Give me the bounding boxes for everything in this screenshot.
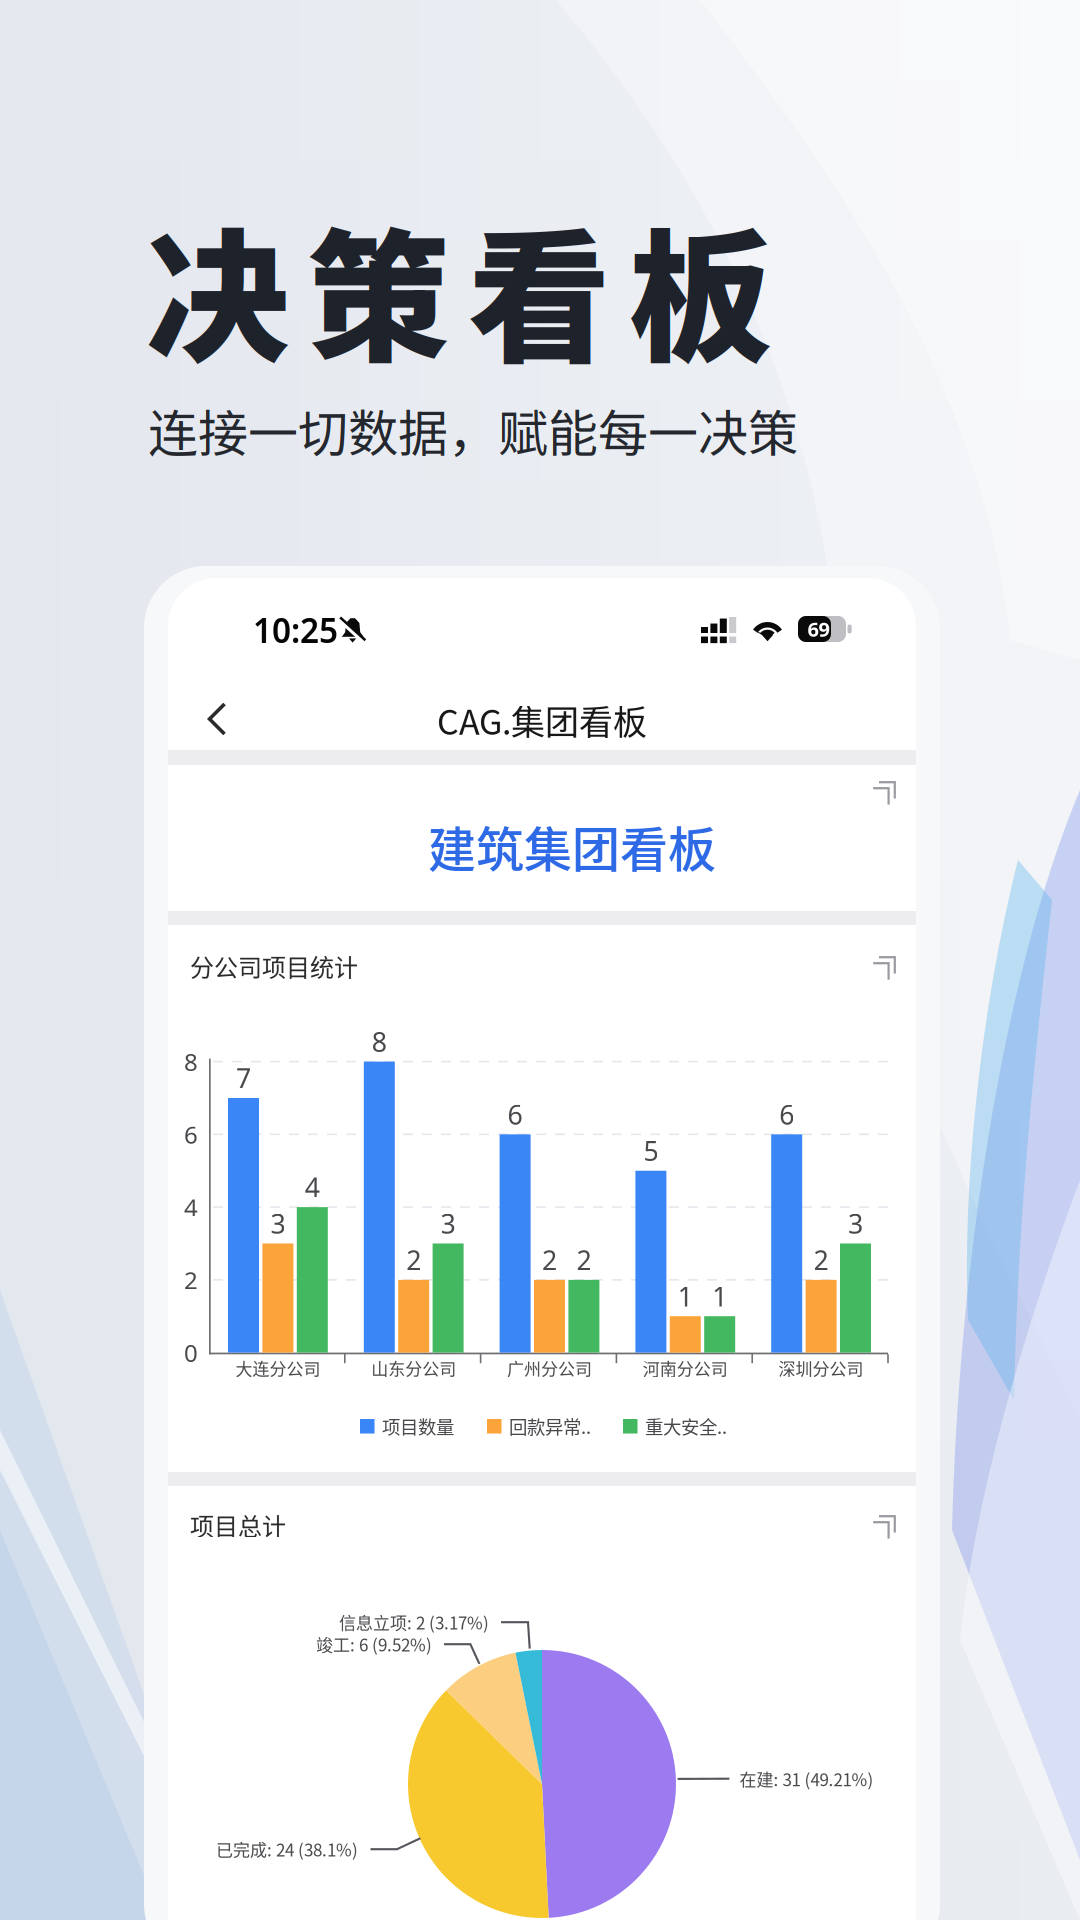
- staticText: 2: [406, 1242, 421, 1277]
- staticText: 大连分公司: [235, 1356, 320, 1380]
- staticText: CAG.集团看板: [437, 695, 647, 745]
- staticText: 6: [184, 1118, 198, 1150]
- staticText: 项目总计: [190, 1508, 286, 1542]
- staticText: 建筑集团看板: [428, 811, 716, 881]
- staticText: 2: [814, 1242, 829, 1277]
- staticText: 信息立项: 2 (3.17%): [339, 1610, 489, 1634]
- staticText: 4: [184, 1191, 198, 1223]
- staticText: 5: [643, 1133, 658, 1168]
- staticText: 重大安全..: [645, 1413, 727, 1439]
- staticText: 3: [270, 1206, 285, 1241]
- staticText: 分公司项目统计: [190, 949, 358, 983]
- staticText: 6: [779, 1097, 794, 1132]
- staticText: 板: [629, 184, 772, 392]
- staticText: 8: [372, 1024, 387, 1059]
- staticText: 0: [184, 1337, 198, 1369]
- staticText: 连接一切数据，赋能每一决策: [148, 394, 798, 466]
- staticText: 广州分公司: [507, 1356, 592, 1380]
- staticText: 4: [305, 1169, 320, 1205]
- staticText: 在建: 31 (49.21%): [739, 1766, 873, 1791]
- staticText: 已完成: 24 (38.1%): [216, 1837, 358, 1861]
- staticText: 决: [146, 184, 289, 392]
- staticText: 山东分公司: [371, 1356, 456, 1380]
- staticText: 3: [848, 1206, 863, 1241]
- staticText: 2: [576, 1242, 591, 1277]
- staticText: 6: [508, 1097, 523, 1132]
- staticText: 8: [184, 1046, 198, 1078]
- button[interactable]: Back: [178, 680, 256, 758]
- staticText: 10:25: [253, 608, 338, 652]
- staticText: 2: [542, 1242, 557, 1277]
- staticText: 7: [236, 1060, 251, 1096]
- staticText: 2: [184, 1264, 198, 1296]
- staticText: 1: [712, 1278, 727, 1314]
- staticText: 策: [307, 184, 450, 392]
- staticText: 3: [441, 1206, 456, 1241]
- staticText: 项目数量: [382, 1413, 454, 1439]
- staticText: 回款异常..: [509, 1413, 591, 1439]
- staticText: 深圳分公司: [779, 1356, 864, 1380]
- staticText: 竣工: 6 (9.52%): [316, 1632, 432, 1656]
- staticText: 1: [678, 1278, 693, 1314]
- staticText: 69: [807, 616, 829, 642]
- staticText: 河南分公司: [643, 1356, 728, 1380]
- staticText: 看: [468, 184, 611, 392]
